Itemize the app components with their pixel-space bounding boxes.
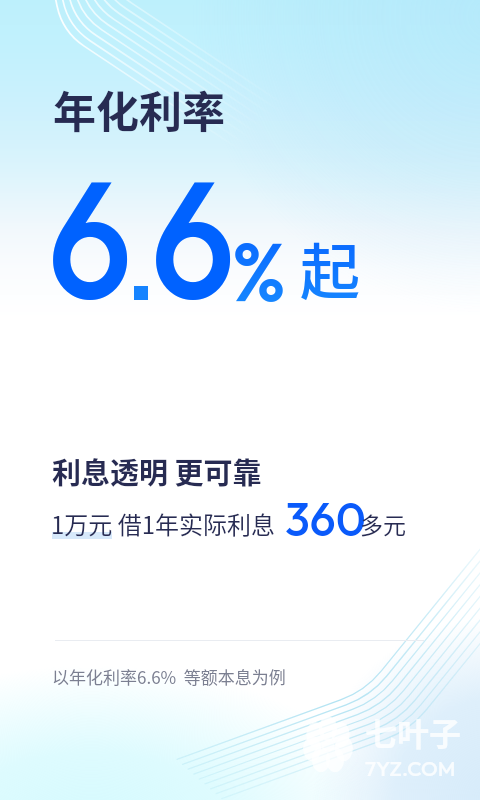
staticText: 360	[285, 490, 366, 548]
staticText: 利息透明 更可靠	[52, 450, 262, 492]
staticText: %	[232, 219, 286, 322]
staticText: 6	[151, 132, 236, 341]
staticText: 1万元 借1年实际利息	[51, 506, 276, 541]
staticText: 6	[48, 132, 133, 341]
staticText: 年化利率	[53, 78, 225, 140]
staticText: 起	[300, 224, 360, 311]
staticText: 七叶子	[365, 709, 462, 755]
staticText: 7YZ.COM	[365, 755, 456, 781]
staticText: 多元	[360, 507, 406, 540]
staticText: 以年化利率6.6% 等额本息为例	[52, 664, 286, 689]
